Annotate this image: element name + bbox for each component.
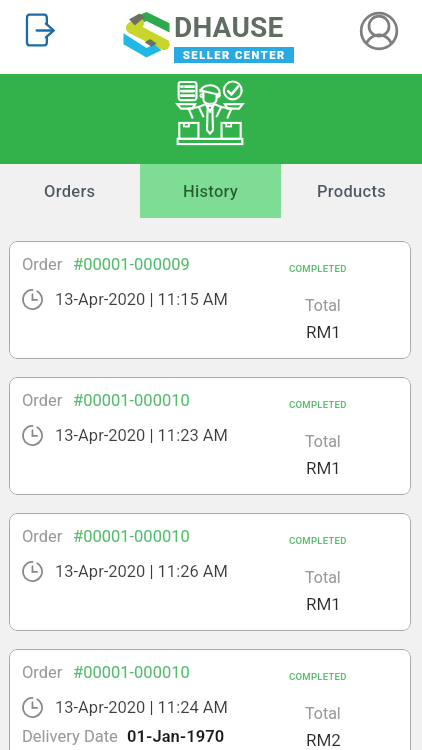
button[interactable]: History — [140, 164, 281, 218]
staticText: History — [183, 182, 239, 201]
staticText: SELLER CENTER — [183, 49, 286, 62]
staticText: Order — [22, 663, 63, 682]
staticText: 13-Apr-2020 | 11:23 AM — [55, 426, 228, 445]
staticText: COMPLETED — [289, 399, 347, 410]
staticText: Order — [22, 255, 63, 274]
staticText: Total — [305, 296, 341, 315]
staticText: 13-Apr-2020 | 11:24 AM — [55, 698, 228, 717]
button[interactable]: Logout — [13, 4, 67, 56]
staticText: Total — [305, 568, 341, 587]
staticText: #00001-000009 — [73, 255, 190, 274]
staticText: #00001-000010 — [73, 527, 190, 546]
button[interactable]: Order — [9, 377, 411, 495]
staticText: Order — [22, 391, 63, 410]
button[interactable]: Order — [9, 649, 411, 750]
staticText: Total — [305, 432, 341, 451]
staticText: COMPLETED — [289, 263, 347, 274]
staticText: 13-Apr-2020 | 11:15 AM — [55, 290, 228, 309]
staticText: Orders — [44, 182, 96, 201]
staticText: RM1 — [306, 322, 341, 342]
staticText: 13-Apr-2020 | 11:26 AM — [55, 562, 228, 581]
staticText: Order — [22, 527, 63, 546]
staticText: COMPLETED — [289, 535, 347, 546]
staticText: RM2 — [306, 730, 341, 750]
staticText: COMPLETED — [289, 671, 347, 682]
staticText: 01-Jan-1970 — [127, 727, 225, 746]
button[interactable]: Orders — [0, 164, 140, 218]
staticText: DHAUSE — [174, 11, 284, 44]
button[interactable]: Products — [281, 164, 422, 218]
staticText: #00001-000010 — [73, 663, 190, 682]
staticText: #00001-000010 — [73, 391, 190, 410]
staticText: Total — [305, 704, 341, 723]
button[interactable]: Order — [9, 241, 411, 359]
staticText: Delivery Date — [22, 727, 118, 746]
staticText: Products — [317, 182, 386, 201]
staticText: RM1 — [306, 458, 341, 478]
button[interactable]: Profile — [352, 4, 406, 58]
staticText: RM1 — [306, 594, 341, 614]
button[interactable]: Order — [9, 513, 411, 631]
